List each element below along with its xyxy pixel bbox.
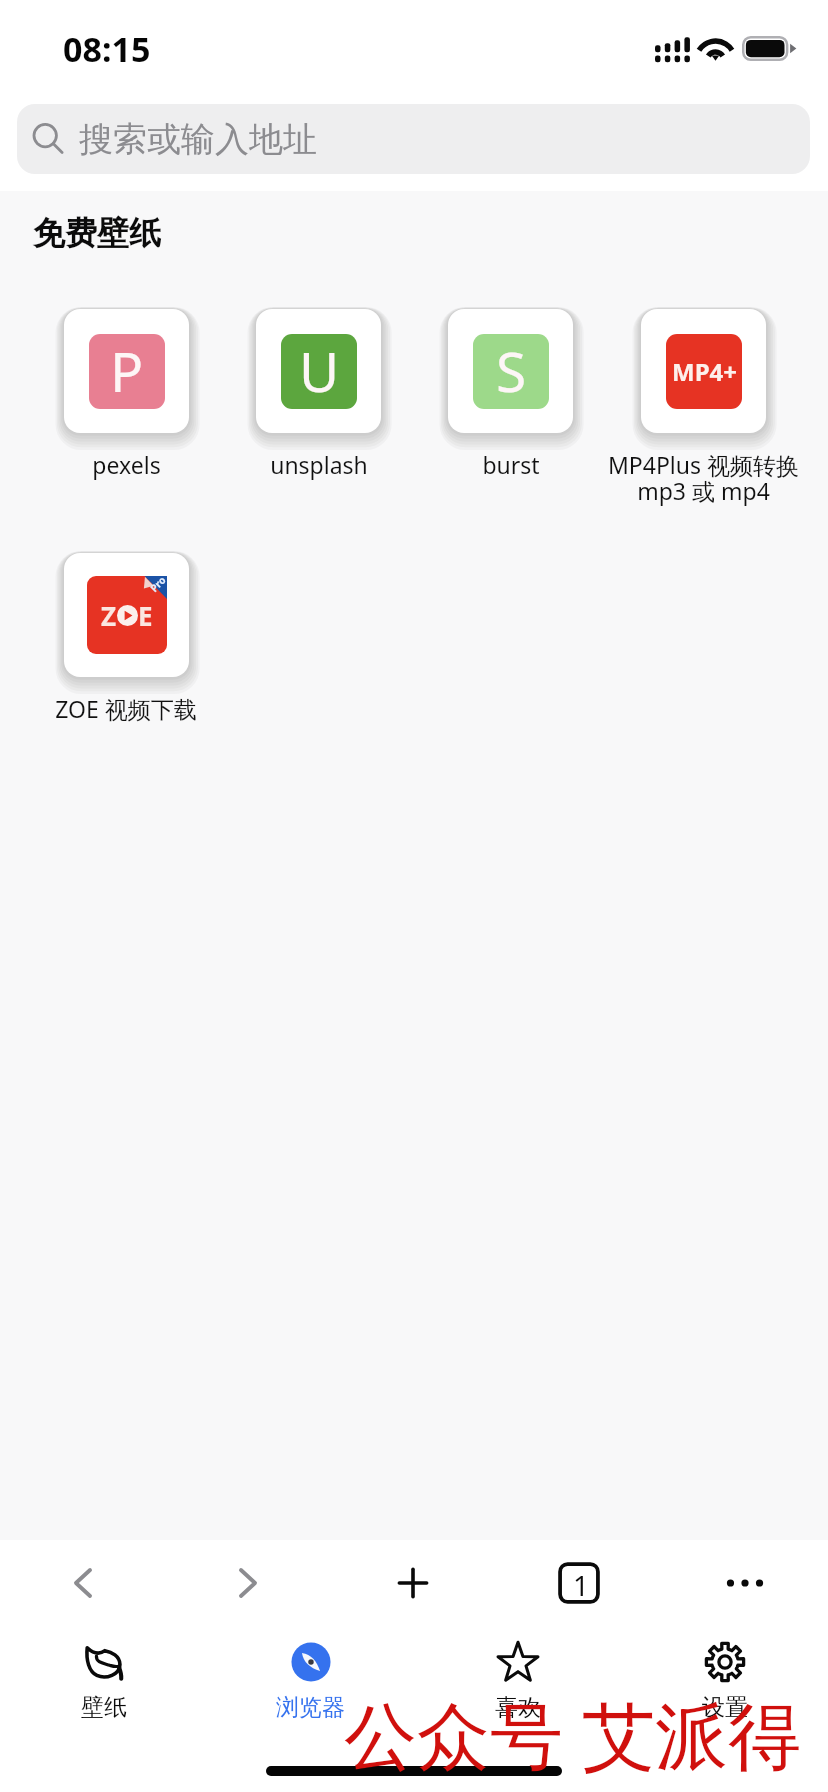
button[interactable]: New tab — [330, 1540, 496, 1625]
button[interactable]: S — [414, 305, 606, 480]
button[interactable]: 喜欢 — [414, 1625, 621, 1731]
button[interactable]: 壁纸 — [0, 1625, 207, 1731]
button[interactable]: Back — [0, 1540, 165, 1625]
staticText: unsplash — [270, 449, 368, 480]
button[interactable]: 设置 — [621, 1625, 828, 1731]
button[interactable]: 浏览器 — [207, 1625, 414, 1731]
staticText: 设置 — [702, 1693, 748, 1722]
staticText: MP4+ — [672, 355, 737, 388]
staticText: S — [496, 334, 527, 408]
button[interactable]: U — [222, 305, 414, 480]
staticText: P — [110, 334, 144, 408]
button[interactable]: Z — [30, 549, 222, 724]
staticText: 1 — [573, 1566, 590, 1604]
button[interactable]: P — [30, 305, 222, 480]
staticText: 喜欢 — [495, 1693, 541, 1722]
button[interactable]: More — [662, 1540, 828, 1625]
staticText: 浏览器 — [276, 1693, 345, 1722]
button[interactable]: 搜索或输入地址 — [17, 104, 810, 174]
button[interactable]: MP4+ — [607, 305, 799, 507]
staticText: pexels — [92, 449, 161, 480]
button[interactable]: Tabs — [496, 1540, 662, 1625]
staticText: MP4Plus 视频转换 mp3 或 mp4 — [608, 449, 799, 507]
staticText: E — [138, 598, 153, 633]
staticText: 搜索或输入地址 — [79, 118, 317, 161]
staticText: U — [299, 334, 340, 408]
staticText: burst — [482, 449, 540, 480]
staticText: 08:15 — [63, 26, 151, 72]
staticText: Z — [101, 598, 117, 633]
staticText: Pro — [147, 573, 168, 594]
staticText: 公众号 艾派得 — [344, 1684, 801, 1784]
button[interactable]: Forward — [165, 1540, 330, 1625]
staticText: 壁纸 — [81, 1693, 127, 1722]
staticText: 免费壁纸 — [33, 213, 161, 253]
staticText: ZOE 视频下载 — [55, 693, 197, 724]
